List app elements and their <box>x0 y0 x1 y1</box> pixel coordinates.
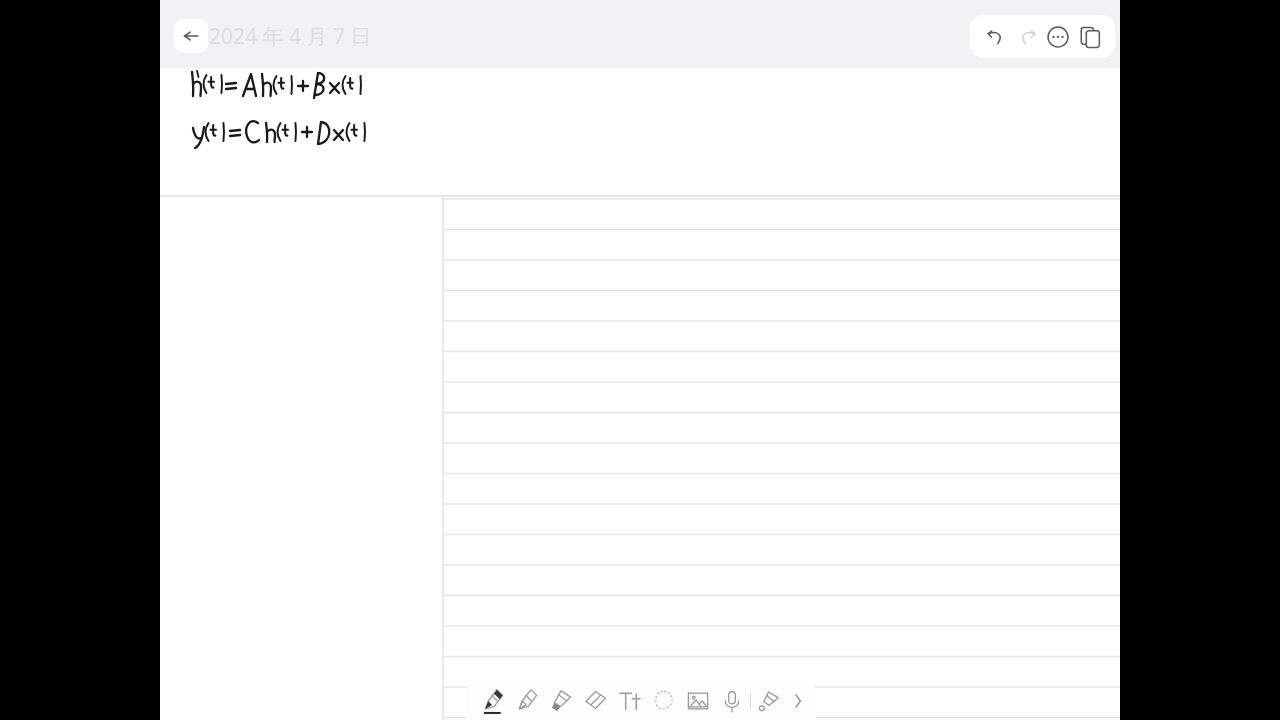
button[interactable]: Highlighter <box>546 681 577 720</box>
button[interactable]: Record audio <box>716 681 747 720</box>
button[interactable]: Redo <box>1012 22 1042 52</box>
button[interactable]: Eraser <box>580 681 611 720</box>
button[interactable]: Lasso select <box>648 681 679 720</box>
staticText: 2024 年 4 月 7 日 <box>209 22 372 51</box>
button[interactable]: Split view <box>1075 22 1105 52</box>
button[interactable]: Insert image <box>682 681 713 720</box>
button[interactable]: Text <box>614 681 645 720</box>
button[interactable]: Pen <box>478 681 509 720</box>
button[interactable]: More tools <box>788 681 808 720</box>
button[interactable]: Pencil <box>512 681 543 720</box>
button[interactable]: Laser pointer <box>754 681 785 720</box>
button[interactable]: Undo <box>980 22 1010 52</box>
button[interactable]: Back <box>174 19 208 53</box>
button[interactable]: More options <box>1043 22 1073 52</box>
